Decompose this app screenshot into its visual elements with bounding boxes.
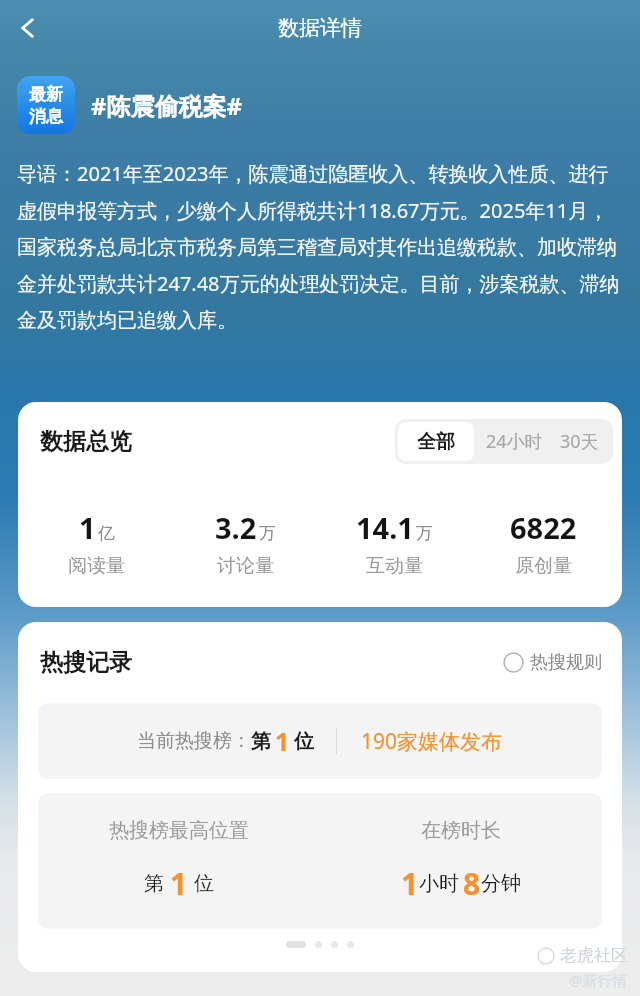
staticText: 导语：2021年至2023年，陈震通过隐匿收入、转换收入性质、进行虚假申报等方式… bbox=[17, 160, 623, 333]
staticText: 1 bbox=[170, 863, 188, 904]
staticText: 在榜时长 bbox=[421, 818, 501, 843]
staticText: 热搜记录 bbox=[40, 648, 132, 677]
staticText: @新行情 bbox=[569, 970, 628, 990]
staticText: 老虎社区 bbox=[560, 945, 628, 966]
staticText: 1 bbox=[275, 724, 290, 758]
button[interactable]: 热搜规则 bbox=[503, 651, 602, 674]
staticText: 小时 bbox=[419, 871, 459, 896]
staticText: 互动量 bbox=[366, 554, 423, 578]
staticText: 原创量 bbox=[515, 554, 572, 578]
button[interactable]: 全部 bbox=[398, 422, 474, 461]
staticText: 阅读量 bbox=[68, 554, 125, 578]
staticText: 6822 bbox=[510, 508, 577, 547]
button[interactable]: 1 bbox=[22, 508, 171, 578]
staticText: 14.1 bbox=[356, 508, 414, 547]
button[interactable]: 30天 bbox=[552, 419, 613, 464]
staticText: 位 bbox=[294, 729, 314, 754]
button[interactable]: 3.2 bbox=[171, 508, 320, 578]
staticText: 亿 bbox=[98, 523, 115, 544]
staticText: 热搜规则 bbox=[530, 651, 602, 674]
staticText: 24小时 bbox=[486, 429, 543, 454]
staticText: 190家媒体发布 bbox=[361, 727, 503, 756]
staticText: 最新 bbox=[29, 84, 63, 105]
staticText: 万 bbox=[416, 523, 433, 544]
button[interactable]: 6822 bbox=[469, 508, 618, 578]
staticText: 热搜榜最高位置 bbox=[109, 818, 249, 843]
staticText: #陈震偷税案# bbox=[91, 89, 243, 122]
button[interactable]: 14.1 bbox=[320, 508, 469, 578]
staticText: 3.2 bbox=[215, 508, 257, 547]
staticText: 数据详情 bbox=[278, 15, 362, 41]
staticText: 数据总览 bbox=[40, 427, 132, 456]
staticText: 1 bbox=[79, 508, 96, 547]
staticText: 万 bbox=[259, 523, 276, 544]
staticText: 消息 bbox=[29, 106, 63, 127]
staticText: 讨论量 bbox=[217, 554, 274, 578]
staticText: 第 bbox=[144, 871, 164, 896]
button[interactable]: 24小时 bbox=[477, 419, 552, 464]
staticText: 全部 bbox=[417, 430, 455, 454]
staticText: 当前热搜榜： bbox=[137, 729, 251, 753]
staticText: 分钟 bbox=[481, 871, 521, 896]
button[interactable]: Back bbox=[4, 4, 52, 52]
staticText: 30天 bbox=[560, 429, 599, 454]
staticText: 1 bbox=[401, 863, 419, 904]
staticText: 第 bbox=[251, 729, 271, 754]
staticText: 位 bbox=[194, 871, 214, 896]
staticText: 8 bbox=[463, 863, 481, 904]
